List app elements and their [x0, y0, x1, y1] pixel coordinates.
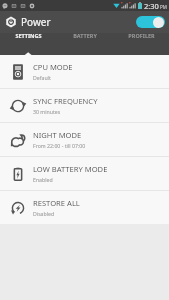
staticText: SETTINGS — [15, 32, 42, 39]
button[interactable]: BATTERY — [57, 33, 113, 40]
staticText: NIGHT MODE — [33, 130, 82, 140]
staticText: Disabled — [33, 210, 55, 217]
staticText: Default — [33, 74, 51, 81]
staticText: Power — [21, 15, 51, 29]
button[interactable]: PROFILER — [113, 33, 169, 40]
staticText: From 22:00 - till 07:00 — [33, 142, 86, 149]
staticText: PROFILER — [128, 32, 155, 39]
button[interactable]: SYNC FREQUENCY — [0, 89, 169, 122]
staticText: RESTORE ALL — [33, 198, 80, 208]
staticText: Enabled — [33, 176, 53, 183]
button[interactable]: SETTINGS — [0, 33, 57, 40]
staticText: 30 minutes — [33, 108, 61, 115]
button[interactable]: Power toggle — [136, 16, 165, 28]
button[interactable]: NIGHT MODE — [0, 123, 169, 156]
staticText: PM — [160, 4, 167, 10]
staticText: LOW BATTERY MODE — [33, 164, 108, 174]
staticText: CPU MODE — [33, 62, 73, 72]
button[interactable]: CPU MODE — [0, 55, 169, 88]
staticText: SYNC FREQUENCY — [33, 96, 98, 106]
staticText: 2:30 — [144, 1, 159, 11]
button[interactable]: LOW BATTERY MODE — [0, 157, 169, 190]
button[interactable]: RESTORE ALL — [0, 191, 169, 224]
staticText: BATTERY — [73, 32, 97, 39]
